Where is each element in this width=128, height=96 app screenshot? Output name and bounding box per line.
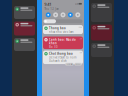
button[interactable]: Chot thong bao [43, 51, 83, 64]
staticText: Bo 30 [49, 45, 58, 49]
button[interactable]: Quick toggle [67, 12, 74, 18]
staticText: 5m [80, 52, 82, 54]
staticText: 2m [80, 38, 82, 40]
staticText: now [79, 26, 82, 28]
staticText: Deliver/Start to nom Uuhanh dich [49, 56, 76, 63]
staticText: Canh bao: Muc do khan [49, 38, 76, 45]
button[interactable]: Quick toggle [74, 12, 81, 18]
staticText: 9:41 [44, 2, 51, 7]
staticText: Chot thong bao [49, 52, 73, 55]
button[interactable]: Quick toggle [59, 12, 67, 18]
staticText: nhac nho viec lam [49, 30, 73, 34]
staticText: Bo qua [76, 63, 81, 65]
staticText: Xem chi tiet [66, 63, 72, 65]
button[interactable]: Quick toggle [44, 12, 52, 18]
staticText: Thong bao [49, 26, 66, 30]
button[interactable]: Thong bao [43, 25, 83, 34]
button[interactable]: Quick toggle [52, 12, 59, 18]
staticText: LTE [75, 2, 78, 5]
button[interactable]: Canh bao: Muc do khan [43, 37, 83, 49]
staticText: Thu 12 Jan [44, 7, 59, 11]
